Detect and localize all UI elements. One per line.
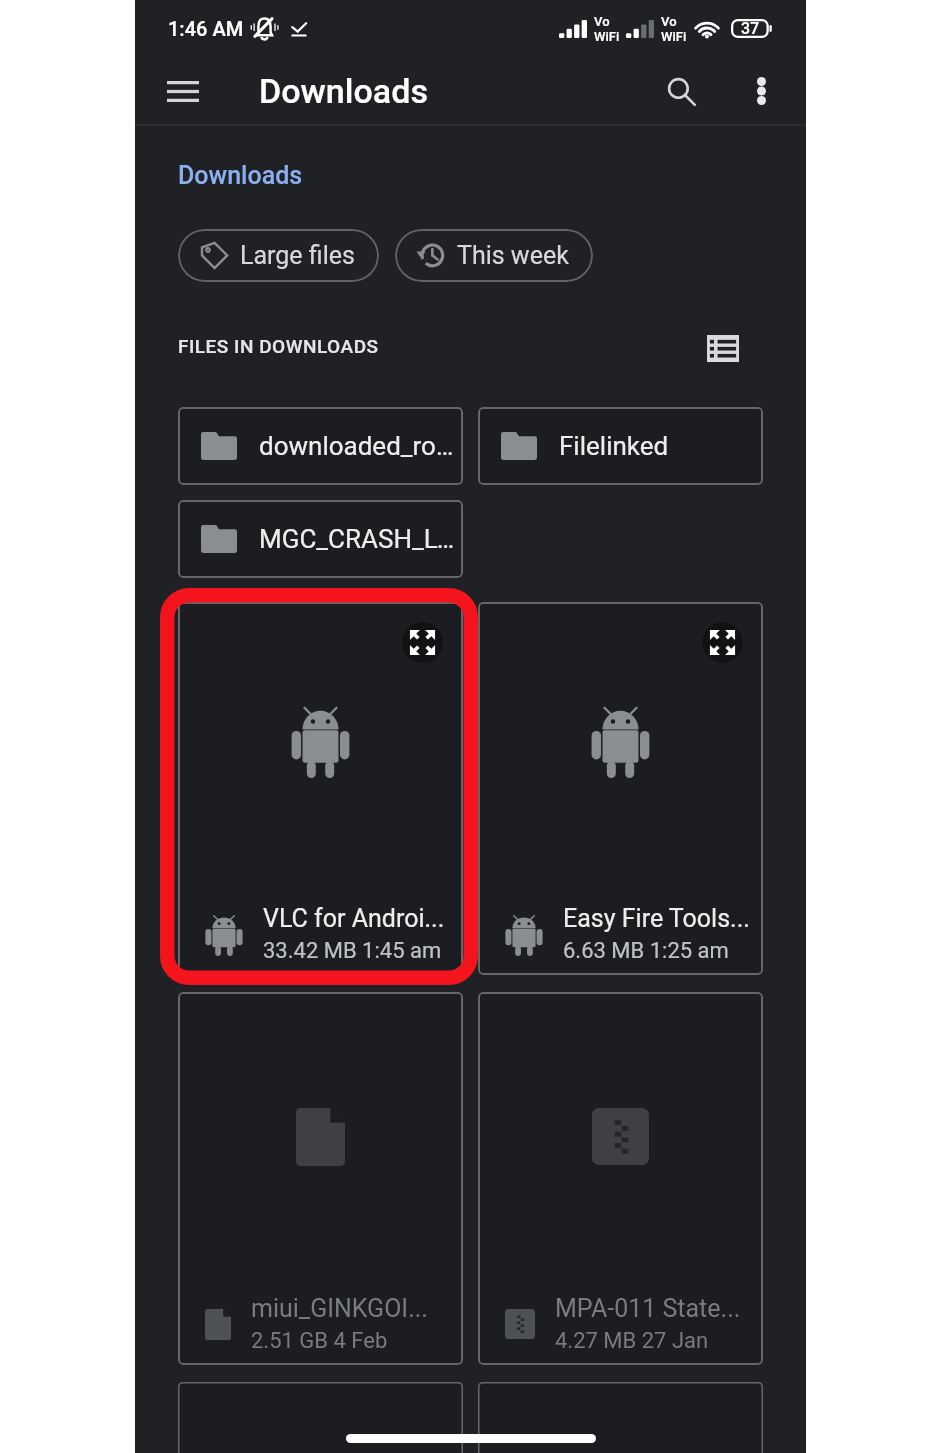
button[interactable]: Expand preview	[702, 622, 743, 663]
staticText: Downloads	[178, 161, 303, 190]
staticText: MGC_CRASH_LOGS	[259, 524, 457, 554]
staticText: This week	[457, 241, 569, 270]
button[interactable]: miui_GINKGOI...	[178, 992, 463, 1365]
button[interactable]: downloaded_rom_files_here	[178, 407, 463, 485]
button[interactable]	[178, 1382, 463, 1453]
button[interactable]: MGC_CRASH_LOGS	[178, 500, 463, 578]
staticText: 4.27 MB 27 Jan	[555, 1328, 709, 1354]
staticText: miui_GINKGOI...	[251, 1294, 428, 1323]
button[interactable]: Expand preview	[478, 602, 763, 975]
staticText: Vo	[661, 14, 677, 29]
button[interactable]	[478, 1382, 763, 1453]
staticText: Large files	[240, 241, 355, 270]
staticText: VLC for Androi...	[263, 904, 445, 933]
staticText: Downloads	[259, 71, 428, 111]
staticText: 6.63 MB 1:25 am	[563, 938, 729, 964]
staticText: Easy Fire Tools...	[563, 904, 750, 933]
button[interactable]: MPA-011 State...	[478, 992, 763, 1365]
staticText: WiFi	[661, 29, 687, 44]
button[interactable]: Filelinked	[478, 407, 763, 485]
staticText: 33.42 MB 1:45 am	[263, 938, 442, 964]
staticText: 1:46 AM	[168, 17, 244, 40]
button[interactable]: Search	[656, 66, 706, 116]
staticText: 37	[741, 19, 760, 38]
staticText: downloaded_rom_files_here	[259, 431, 457, 461]
button[interactable]: Switch to list view	[703, 328, 743, 368]
button[interactable]: This week	[395, 229, 593, 282]
button[interactable]: More options	[736, 66, 786, 116]
staticText: Filelinked	[559, 431, 669, 461]
button[interactable]: Large files	[178, 229, 379, 282]
staticText: FILES IN DOWNLOADS	[178, 335, 379, 357]
staticText: Vo	[594, 14, 610, 29]
staticText: WiFi	[594, 29, 620, 44]
button[interactable]: Open navigation menu	[158, 66, 208, 116]
staticText: 2.51 GB 4 Feb	[251, 1328, 388, 1354]
button[interactable]: Expand preview	[402, 622, 443, 663]
staticText: MPA-011 State...	[555, 1294, 741, 1323]
button[interactable]: Expand preview	[178, 602, 463, 975]
